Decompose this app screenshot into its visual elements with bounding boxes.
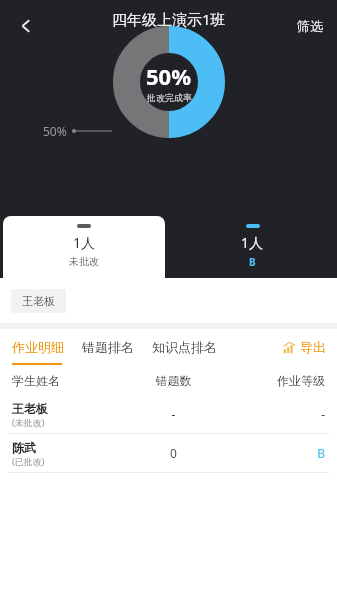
staticText: (未批改) (12, 416, 45, 428)
staticText: 导出 (300, 339, 326, 355)
staticText: 筛选 (297, 18, 323, 34)
staticText: - (119, 406, 228, 422)
staticText: 王老板 (22, 294, 55, 308)
staticText: 未批改 (69, 255, 99, 268)
staticText: 0 (119, 445, 228, 461)
staticText: 50% (43, 123, 67, 139)
button[interactable]: 筛选 (291, 10, 329, 42)
staticText: 错题数 (119, 373, 228, 388)
button[interactable]: 陈武 (0, 434, 337, 473)
staticText: 1人 (241, 233, 264, 252)
staticText: 50% (146, 61, 192, 91)
staticText: 陈武 (12, 440, 36, 455)
staticText: B (249, 255, 256, 269)
staticText: 批改完成率 (147, 92, 192, 103)
staticText: (已批改) (12, 455, 45, 467)
button[interactable]: 知识点排名 (150, 339, 219, 355)
button[interactable]: 王老板 (11, 289, 66, 313)
staticText: (2) 教材第5页 (142, 31, 197, 43)
button[interactable]: Back (6, 6, 46, 46)
staticText: - (228, 406, 325, 422)
staticText: 错题排名 (82, 339, 134, 355)
staticText: 四年级上演示1班 (112, 9, 226, 29)
button[interactable]: 1人 (168, 216, 337, 278)
button[interactable]: 王老板 (0, 395, 337, 434)
button[interactable]: 1人 (3, 216, 165, 278)
staticText: 1人 (73, 233, 96, 252)
staticText: 学生姓名 (12, 373, 119, 388)
staticText: 作业等级 (228, 373, 325, 388)
staticText: 王老板 (12, 401, 48, 416)
staticText: B (228, 445, 325, 461)
button[interactable]: 错题排名 (80, 339, 136, 355)
button[interactable]: 作业明细 (10, 339, 66, 355)
button[interactable]: 导出 (281, 335, 328, 359)
staticText: 作业明细 (12, 339, 64, 355)
staticText: 知识点排名 (152, 339, 217, 355)
